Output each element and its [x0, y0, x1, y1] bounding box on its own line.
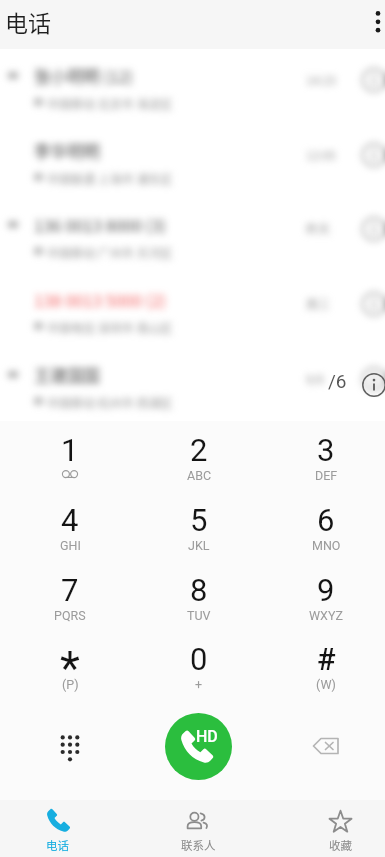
button[interactable]: Hide keypad: [41, 717, 99, 775]
staticText: DEF: [315, 468, 338, 483]
staticText: 中国移动 杭州市 西湖区: [47, 394, 173, 411]
staticText: 周三: [306, 295, 331, 312]
button[interactable]: 8: [137, 572, 261, 632]
staticText: 中国移动 广州市 天河区: [47, 244, 173, 261]
staticText: 电话: [5, 5, 51, 38]
button[interactable]: 6: [264, 502, 385, 562]
staticText: 中国电信 深圳市 南山区: [47, 319, 173, 336]
staticText: TUV: [187, 608, 211, 623]
staticText: 4: [61, 502, 79, 534]
button[interactable]: 收藏: [285, 800, 385, 857]
staticText: 2: [190, 432, 208, 464]
button[interactable]: Delete: [297, 717, 355, 775]
staticText: GHI: [60, 538, 81, 553]
staticText: 3: [317, 432, 335, 464]
button[interactable]: 联系人: [143, 800, 253, 857]
staticText: 138 0013 5000 (2): [34, 288, 167, 312]
staticText: +: [195, 677, 203, 692]
staticText: 7: [61, 572, 79, 604]
staticText: 12:05: [306, 146, 336, 163]
button[interactable]: 电话: [2, 800, 112, 857]
staticText: 0: [190, 641, 208, 673]
button[interactable]: More options: [356, 0, 385, 49]
staticText: 8: [190, 572, 208, 604]
staticText: 电话: [46, 837, 69, 853]
staticText: (P): [62, 677, 79, 692]
button[interactable]: Call: [165, 713, 232, 780]
staticText: 9/6: [306, 370, 325, 387]
staticText: *: [60, 641, 80, 673]
staticText: 6: [317, 502, 335, 534]
staticText: 5: [190, 502, 208, 534]
staticText: #: [317, 641, 336, 673]
staticText: HD: [196, 727, 218, 746]
staticText: 收藏: [329, 837, 352, 853]
staticText: 昨天: [306, 220, 331, 237]
button[interactable]: Call details: [358, 369, 385, 401]
staticText: 李华明明: [34, 139, 100, 163]
button[interactable]: 9: [264, 572, 385, 632]
staticText: 1: [61, 432, 79, 464]
staticText: 联系人: [181, 837, 216, 853]
staticText: 中国移动 北京市 海淀区: [47, 95, 173, 112]
button[interactable]: 4: [8, 502, 132, 562]
button[interactable]: 5: [137, 502, 261, 562]
staticText: ABC: [187, 468, 212, 483]
button[interactable]: *: [8, 641, 132, 701]
staticText: 王建国国: [34, 363, 100, 387]
button[interactable]: #: [264, 641, 385, 701]
staticText: 张小明明 (12): [34, 64, 134, 88]
button[interactable]: 0: [137, 641, 261, 701]
staticText: WXYZ: [309, 608, 343, 623]
staticText: 9: [317, 572, 335, 604]
staticText: PQRS: [54, 608, 86, 623]
staticText: 136 0013 8000 (3): [34, 213, 167, 237]
staticText: 14:23: [306, 71, 336, 88]
button[interactable]: 1: [8, 432, 132, 492]
staticText: 中国联通 上海市 浦东区: [47, 170, 173, 187]
button[interactable]: 2: [137, 432, 261, 492]
staticText: /6: [328, 370, 347, 392]
staticText: (W): [316, 677, 336, 692]
staticText: JKL: [188, 538, 210, 553]
button[interactable]: 3: [264, 432, 385, 492]
staticText: MNO: [312, 538, 341, 553]
button[interactable]: 7: [8, 572, 132, 632]
